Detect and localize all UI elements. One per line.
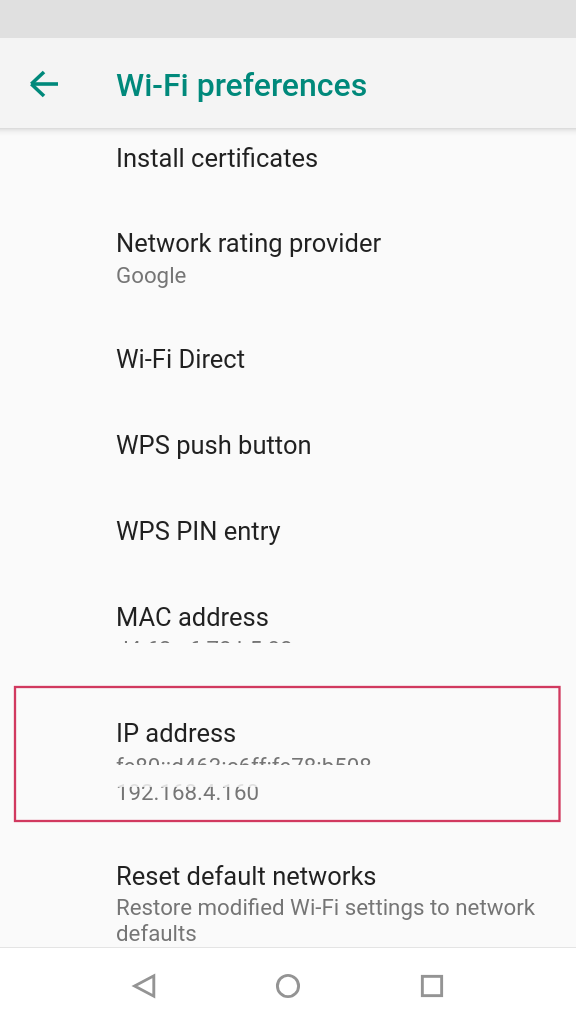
button[interactable]: Home — [252, 950, 324, 1022]
staticText: Google — [116, 262, 187, 288]
staticText: d4:63:c6:78:b5:08 — [116, 638, 293, 643]
staticText: Network rating provider — [116, 228, 382, 258]
staticText: defaults — [116, 920, 197, 946]
button[interactable] — [0, 588, 576, 704]
staticText: IP address — [116, 718, 237, 748]
staticText: WPS PIN entry — [116, 516, 281, 546]
staticText: Network rating provider — [116, 228, 382, 258]
button[interactable] — [0, 214, 576, 330]
button[interactable]: Back — [108, 950, 180, 1022]
button[interactable] — [0, 704, 576, 846]
button[interactable] — [0, 502, 576, 588]
button[interactable] — [0, 128, 576, 214]
staticText: Reset default networks — [116, 861, 377, 891]
button[interactable] — [0, 330, 576, 416]
staticText: WPS push button — [116, 430, 312, 460]
staticText: MAC address — [116, 602, 269, 632]
staticText: Reset default networks — [116, 861, 377, 891]
staticText: 192.168.4.160 — [116, 779, 259, 802]
button[interactable] — [0, 416, 576, 502]
button[interactable]: Recent apps — [396, 950, 468, 1022]
staticText: Wi-Fi Direct — [116, 344, 246, 374]
staticText: WPS push button — [116, 430, 312, 460]
staticText: WPS PIN entry — [116, 516, 281, 546]
staticText: Install certificates — [116, 143, 319, 173]
button[interactable]: Navigate up — [19, 58, 71, 110]
staticText: fe80::d463:c6ff:fe78:b508 — [116, 753, 372, 765]
button[interactable] — [0, 846, 576, 947]
staticText: MAC address — [116, 602, 269, 632]
staticText: Install certificates — [116, 143, 319, 173]
staticText: Restore modified Wi-Fi settings to netwo… — [116, 894, 536, 920]
staticText: Wi-Fi Direct — [116, 344, 246, 374]
staticText: Wi-Fi preferences — [116, 66, 368, 104]
staticText: IP address — [116, 718, 237, 748]
